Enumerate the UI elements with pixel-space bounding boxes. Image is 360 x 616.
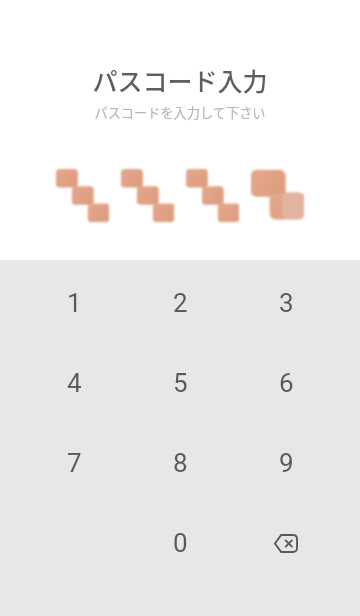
button[interactable]: 0: [127, 503, 233, 583]
button[interactable]: 4: [21, 343, 127, 423]
button[interactable]: 3: [233, 263, 339, 343]
staticText: 3: [279, 288, 294, 318]
button[interactable]: 5: [127, 343, 233, 423]
staticText: 0: [173, 528, 188, 558]
staticText: パスコードを入力して下さい: [94, 103, 266, 122]
button[interactable]: 6: [233, 343, 339, 423]
staticText: 8: [173, 448, 188, 478]
staticText: 5: [173, 368, 188, 398]
button[interactable]: 8: [127, 423, 233, 503]
button[interactable]: Delete: [233, 503, 339, 583]
button[interactable]: 7: [21, 423, 127, 503]
staticText: 9: [279, 448, 294, 478]
staticText: 4: [67, 368, 82, 398]
button[interactable]: 2: [127, 263, 233, 343]
staticText: 2: [173, 288, 188, 318]
staticText: パスコード入力: [92, 62, 268, 98]
staticText: 7: [67, 448, 82, 478]
staticText: 1: [67, 288, 82, 318]
button[interactable]: 1: [21, 263, 127, 343]
staticText: 6: [279, 368, 294, 398]
button[interactable]: 9: [233, 423, 339, 503]
